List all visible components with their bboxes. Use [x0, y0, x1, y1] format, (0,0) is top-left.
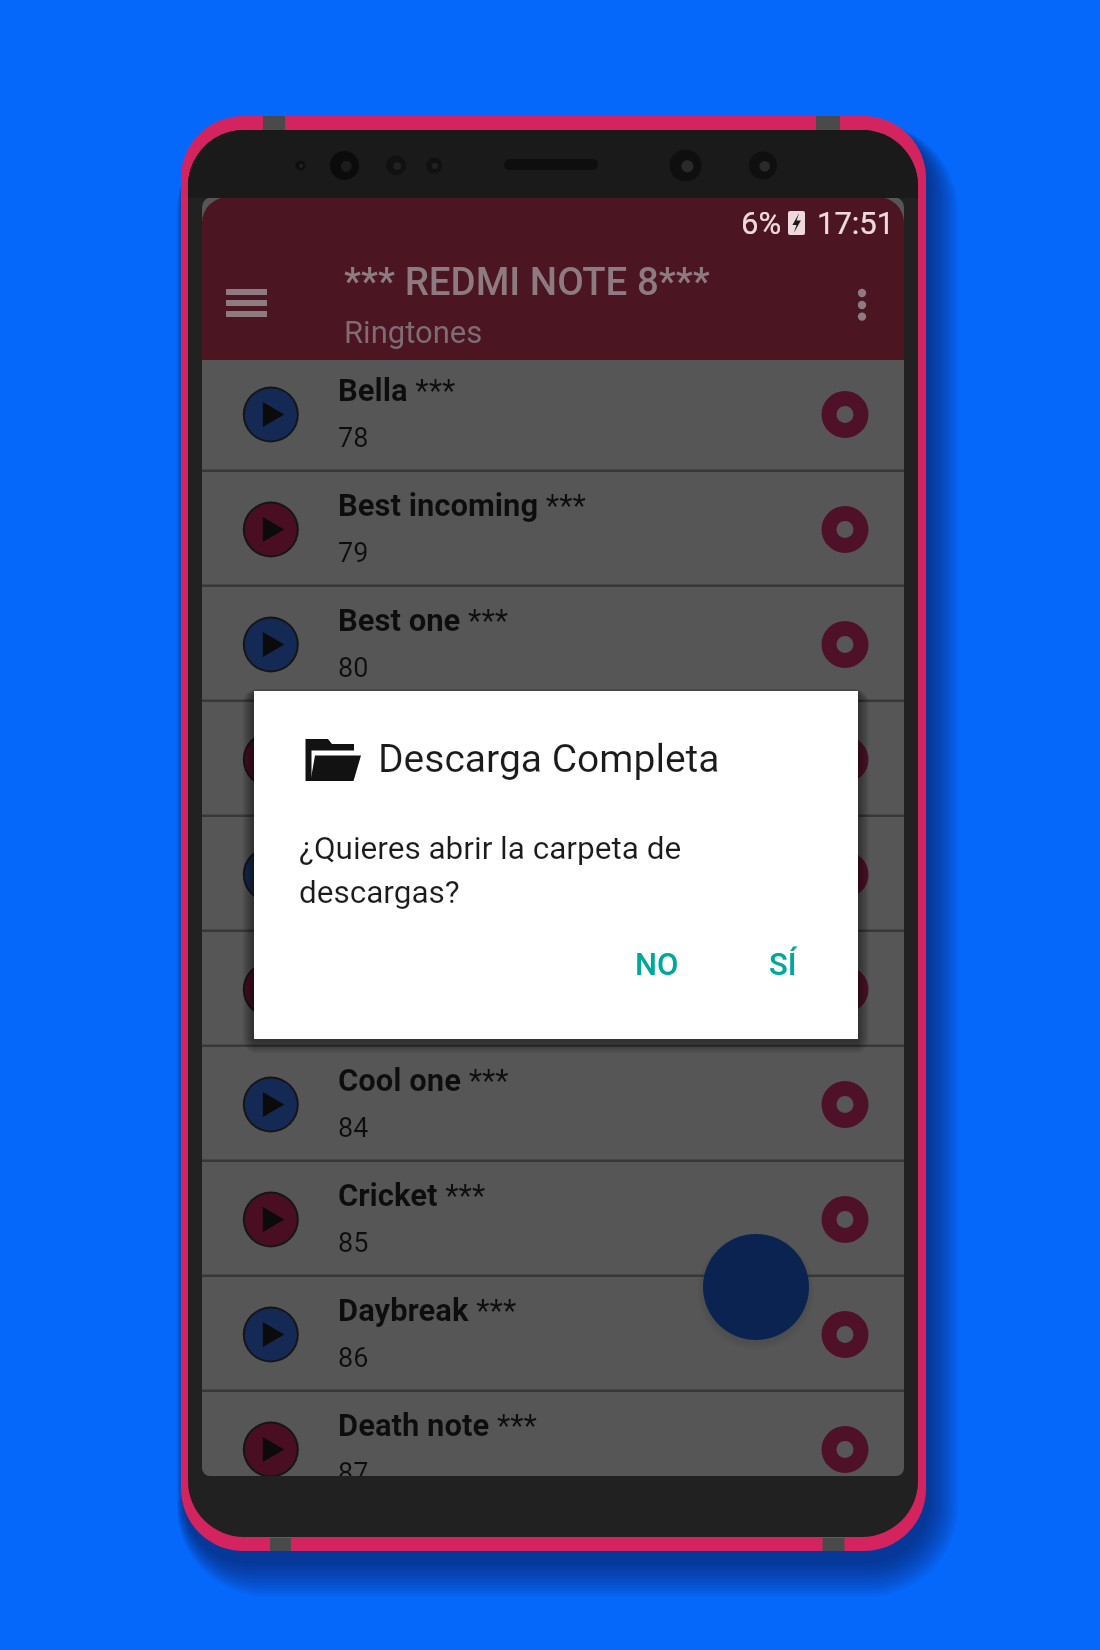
button[interactable]: Cricket ***	[202, 1162, 904, 1277]
staticText: SÍ	[769, 946, 797, 982]
button[interactable]: Classic ***	[202, 932, 904, 1047]
staticText: Bella ***	[338, 372, 456, 408]
staticText: Ringtones	[344, 314, 483, 350]
staticText: 87	[338, 1457, 369, 1476]
staticText: 81	[338, 767, 369, 799]
button[interactable]: Bella ***	[202, 357, 904, 472]
staticText: Cool one ***	[338, 1062, 509, 1098]
button[interactable]: Open navigation menu	[216, 279, 278, 327]
staticText: Best incoming ***	[338, 487, 586, 523]
button[interactable]: Add ringtone	[703, 1234, 809, 1340]
button[interactable]: Death note ***	[202, 1392, 904, 1476]
staticText: Death note ***	[338, 1407, 537, 1443]
button[interactable]: Daybreak ***	[202, 1277, 904, 1392]
button[interactable]: Best one ***	[202, 587, 904, 702]
staticText: 86	[338, 1342, 369, 1374]
staticText: *** REDMI NOTE 8***	[344, 259, 710, 304]
staticText: 80	[338, 652, 369, 684]
staticText: 17:51	[817, 205, 895, 241]
button[interactable]: Best incoming ***	[202, 472, 904, 587]
staticText: Best ringtone ***	[338, 717, 573, 753]
staticText: Cricket ***	[338, 1177, 486, 1213]
staticText: ¿Quieres abrir la carpeta de descargas?	[299, 830, 682, 911]
button[interactable]: NO	[609, 934, 705, 994]
staticText: Descarga Completa	[378, 736, 720, 782]
button[interactable]: Bird call ***	[202, 817, 904, 932]
staticText: 82	[338, 882, 369, 914]
staticText: NO	[635, 946, 679, 982]
button[interactable]: More options	[847, 283, 877, 327]
staticText: Best one ***	[338, 602, 509, 638]
button[interactable]: Best ringtone ***	[202, 702, 904, 817]
staticText: 6%	[741, 205, 782, 241]
staticText: 78	[338, 422, 369, 454]
staticText: 85	[338, 1227, 369, 1259]
button[interactable]: SÍ	[743, 934, 823, 994]
staticText: 79	[338, 537, 369, 569]
staticText: Daybreak ***	[338, 1292, 517, 1328]
staticText: 84	[338, 1112, 369, 1144]
button[interactable]: Cool one ***	[202, 1047, 904, 1162]
staticText: Bird call ***	[338, 832, 500, 868]
